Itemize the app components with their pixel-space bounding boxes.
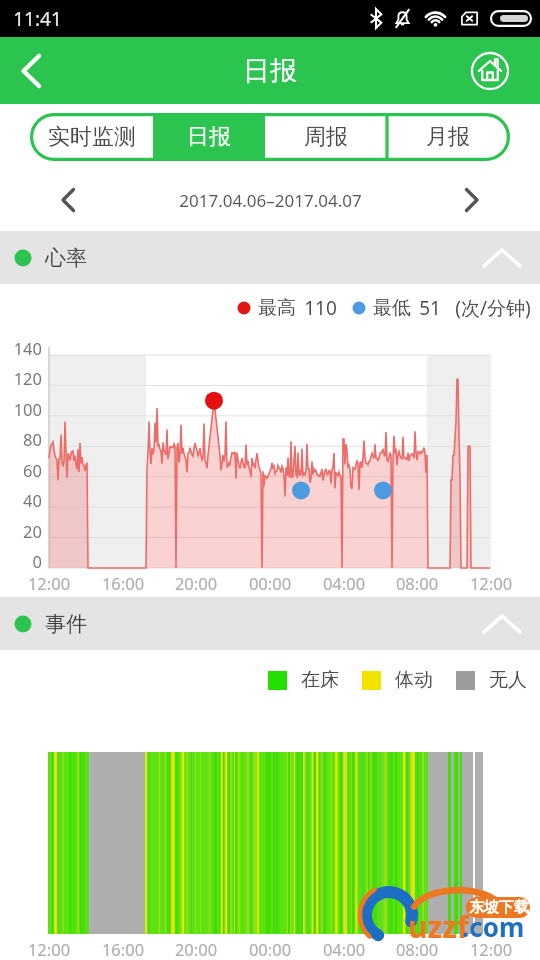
staticText: 20:00 [161, 938, 231, 960]
staticText: 12:00 [14, 572, 84, 594]
staticText: 体动 [395, 668, 433, 692]
staticText: (次/分钟) [455, 295, 531, 321]
staticText: 00:00 [235, 572, 305, 594]
staticText: 最低 [373, 296, 411, 320]
staticText: uzzf [408, 906, 469, 947]
staticText: 08:00 [382, 938, 452, 960]
staticText: 心率 [45, 245, 87, 271]
staticText: 04:00 [309, 572, 379, 594]
staticText: 实时监测 [48, 123, 136, 151]
button[interactable]: Previous day [46, 178, 90, 222]
staticText: 11:41 [13, 6, 62, 32]
staticText: 12:00 [14, 938, 84, 960]
button[interactable]: 日报 [153, 113, 265, 161]
staticText: 0 [0, 550, 42, 572]
button[interactable]: 月报 [387, 113, 509, 161]
staticText: 月报 [426, 123, 470, 151]
staticText: 日报 [243, 54, 297, 88]
staticText: 12:00 [456, 938, 526, 960]
staticText: 80 [0, 428, 42, 450]
staticText: 周报 [304, 123, 348, 151]
staticText: 12:00 [456, 572, 526, 594]
button[interactable]: Next day [450, 178, 494, 222]
staticText: 事件 [45, 611, 87, 637]
button[interactable]: Back [0, 40, 62, 102]
staticText: 60 [0, 459, 42, 481]
staticText: 16:00 [88, 572, 158, 594]
staticText: 40 [0, 489, 42, 511]
staticText: 04:00 [309, 938, 379, 960]
staticText: 20 [0, 520, 42, 542]
staticText: 100 [0, 398, 42, 420]
staticText: 最高 [258, 296, 296, 320]
staticText: 20:00 [161, 572, 231, 594]
button[interactable]: 事件 [0, 597, 540, 650]
staticText: 东坡下载 [469, 898, 529, 917]
staticText: 110 [304, 295, 337, 321]
staticText: 日报 [187, 123, 231, 151]
staticText: 16:00 [88, 938, 158, 960]
staticText: .com [462, 909, 525, 944]
staticText: 120 [0, 367, 42, 389]
button[interactable]: 心率 [0, 231, 540, 284]
button[interactable]: Home [467, 48, 513, 94]
staticText: 140 [0, 337, 42, 359]
staticText: 51 [419, 295, 441, 321]
button[interactable]: 实时监测 [30, 113, 153, 161]
button[interactable]: 周报 [265, 113, 387, 161]
staticText: 无人 [489, 668, 527, 692]
staticText: 08:00 [382, 572, 452, 594]
staticText: 在床 [301, 668, 339, 692]
staticText: 2017.04.06–2017.04.07 [179, 189, 362, 212]
staticText: 00:00 [235, 938, 305, 960]
